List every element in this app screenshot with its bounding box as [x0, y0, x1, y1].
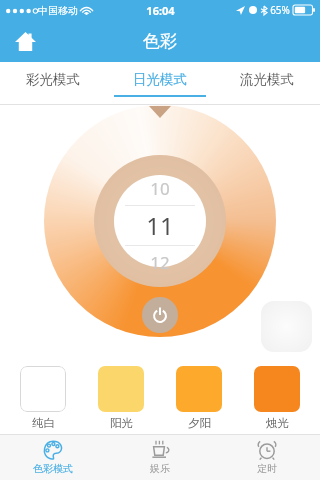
- staticText: 10: [150, 177, 170, 200]
- staticText: 阳光: [110, 416, 133, 430]
- staticText: 定时: [257, 462, 277, 475]
- button[interactable]: 纯白: [20, 366, 66, 430]
- button[interactable]: 娱乐: [106, 434, 213, 480]
- button[interactable]: 烛光: [254, 366, 300, 430]
- staticText: 色彩: [143, 31, 177, 52]
- staticText: 纯白: [32, 416, 55, 430]
- button[interactable]: 色彩模式: [0, 434, 106, 480]
- staticText: 彩光模式: [26, 71, 80, 88]
- staticText: 烛光: [266, 416, 289, 430]
- button[interactable]: 彩光模式: [0, 62, 106, 105]
- button[interactable]: Brightness dial: [0, 105, 320, 355]
- staticText: 16:04: [146, 3, 175, 18]
- button[interactable]: 夕阳: [176, 366, 222, 430]
- button[interactable]: 定时: [213, 434, 320, 480]
- staticText: 流光模式: [240, 71, 294, 88]
- staticText: 中国移动: [38, 4, 78, 17]
- staticText: 11: [146, 209, 174, 242]
- staticText: 12: [150, 251, 170, 274]
- staticText: 娱乐: [150, 462, 170, 475]
- staticText: 夕阳: [188, 416, 211, 430]
- button[interactable]: 日光模式: [106, 62, 213, 105]
- button[interactable]: Power: [142, 297, 178, 333]
- button[interactable]: Home: [8, 24, 42, 58]
- staticText: 65%: [270, 3, 290, 17]
- button[interactable]: 流光模式: [213, 62, 320, 105]
- staticText: 色彩模式: [33, 462, 73, 475]
- button[interactable]: 阳光: [98, 366, 144, 430]
- staticText: 日光模式: [133, 71, 187, 88]
